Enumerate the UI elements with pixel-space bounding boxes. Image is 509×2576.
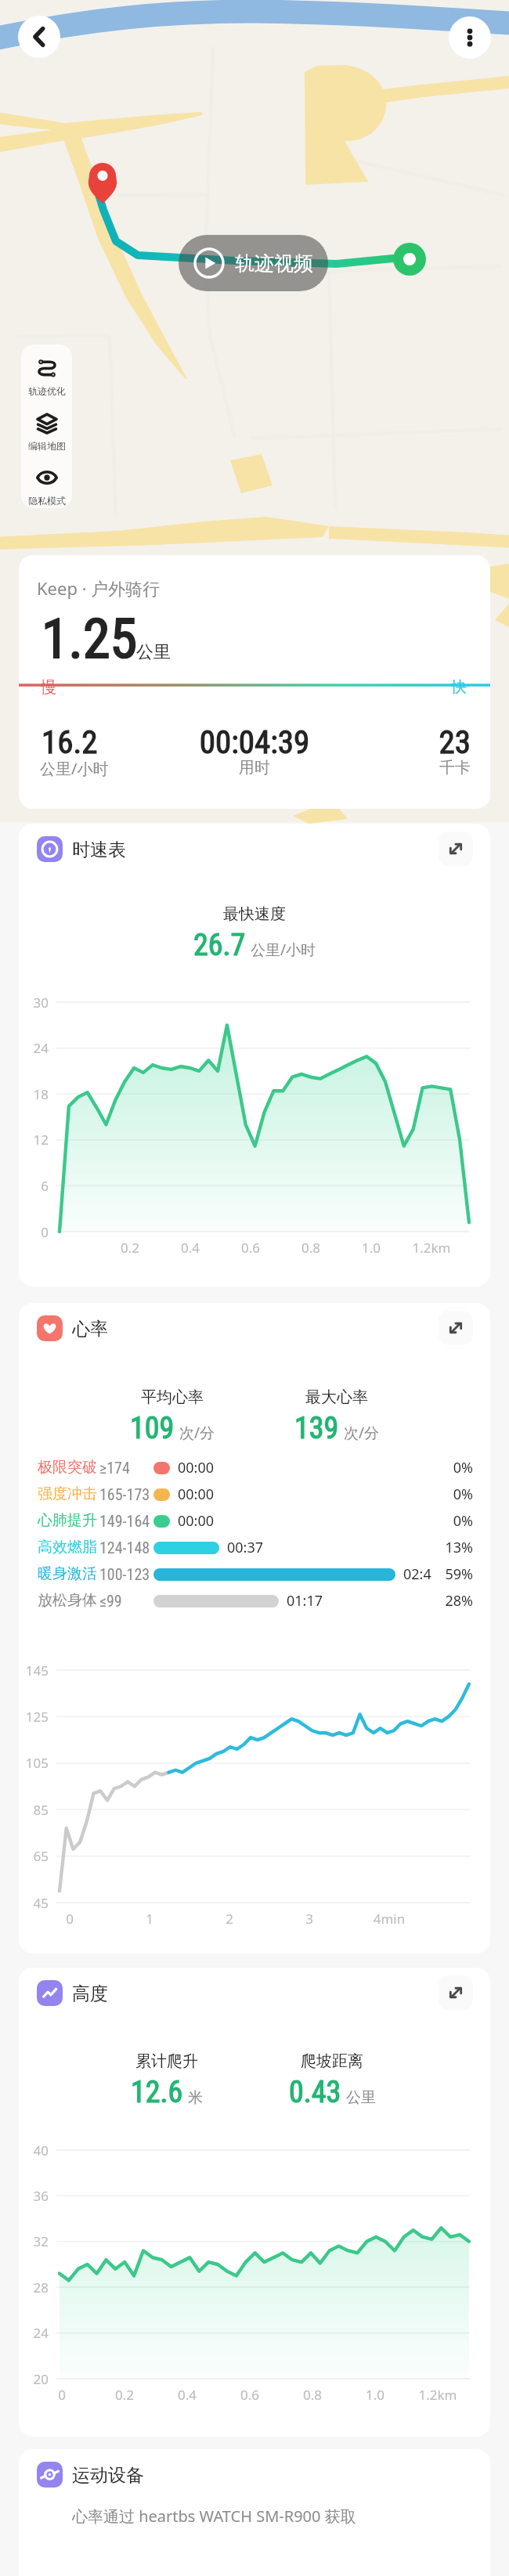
staticText: 公里/小时: [40, 758, 109, 779]
staticText: 139: [294, 1411, 339, 1446]
button[interactable]: Expand: [439, 1311, 473, 1345]
staticText: 30: [19, 994, 49, 1012]
staticText: 强度冲击: [38, 1485, 97, 1503]
staticText: 24: [19, 2324, 49, 2342]
staticText: 32: [19, 2232, 49, 2250]
staticText: 0.4: [143, 1239, 237, 1257]
staticText: 0.2: [78, 2386, 171, 2404]
staticText: 13%: [410, 1538, 473, 1557]
button[interactable]: 隐私模式: [21, 454, 72, 508]
staticText: Keep · 户外骑行: [37, 576, 161, 600]
staticText: 编辑地图: [28, 440, 66, 452]
staticText: 124-148: [99, 1539, 150, 1557]
staticText: 24: [19, 1039, 49, 1057]
staticText: 65: [19, 1847, 49, 1865]
staticText: 00:00: [178, 1485, 215, 1504]
staticText: 16.2: [42, 723, 98, 761]
staticText: 12.6: [131, 2075, 183, 2110]
staticText: 最大心率: [219, 1387, 454, 1407]
staticText: 米: [188, 2088, 203, 2107]
staticText: 109: [130, 1411, 175, 1446]
staticText: 0.6: [204, 1239, 298, 1257]
staticText: 0.8: [265, 2386, 359, 2404]
staticText: 次/分: [344, 1423, 380, 1443]
staticText: 3: [262, 1910, 356, 1928]
staticText: 最快速度: [137, 904, 372, 924]
staticText: 1.2km: [391, 2386, 485, 2404]
staticText: 6: [19, 1177, 49, 1195]
staticText: 平均心率: [55, 1387, 290, 1407]
staticText: 125: [19, 1708, 49, 1726]
staticText: 0%: [410, 1485, 473, 1504]
staticText: 28%: [410, 1591, 473, 1611]
staticText: 公里: [136, 641, 171, 663]
staticText: 12: [19, 1131, 49, 1149]
staticText: 26.7: [193, 928, 246, 963]
button[interactable]: Expand: [439, 832, 473, 866]
staticText: 次/分: [179, 1423, 215, 1443]
staticText: 0.6: [203, 2386, 297, 2404]
button[interactable]: Back: [18, 16, 60, 58]
staticText: 轨迹视频: [235, 251, 313, 276]
staticText: 28: [19, 2278, 49, 2296]
staticText: 01:17: [287, 1591, 323, 1611]
staticText: ≤99: [99, 1592, 122, 1610]
staticText: 0.2: [83, 1239, 177, 1257]
staticText: 累计爬升: [49, 2051, 284, 2071]
staticText: 105: [19, 1754, 49, 1772]
staticText: 用时: [137, 758, 372, 777]
staticText: 公里: [346, 2088, 376, 2107]
staticText: 0: [23, 1910, 117, 1928]
staticText: 1.2km: [384, 1239, 478, 1257]
staticText: 4min: [342, 1910, 436, 1928]
staticText: 1: [103, 1910, 197, 1928]
staticText: 隐私模式: [28, 495, 66, 507]
staticText: 45: [19, 1894, 49, 1912]
staticText: 145: [19, 1661, 49, 1679]
staticText: 23: [314, 723, 471, 761]
staticText: 1.25: [42, 607, 138, 671]
staticText: 18: [19, 1085, 49, 1103]
staticText: 02:4: [403, 1564, 431, 1584]
staticText: 0: [19, 1223, 49, 1241]
staticText: 千卡: [314, 758, 471, 777]
button[interactable]: 轨迹优化: [21, 345, 72, 399]
staticText: 1.0: [324, 1239, 418, 1257]
staticText: 0.43: [289, 2075, 341, 2110]
staticText: 0%: [410, 1458, 473, 1477]
button[interactable]: More options: [449, 16, 491, 59]
staticText: 快: [451, 677, 467, 697]
staticText: 放松身体: [38, 1591, 97, 1610]
staticText: 极限突破: [38, 1458, 97, 1477]
staticText: 00:00: [178, 1458, 215, 1477]
staticText: 时速表: [72, 839, 126, 861]
staticText: 00:04:39: [137, 723, 372, 761]
staticText: 36: [19, 2187, 49, 2205]
staticText: 心率通过 heartbs WATCH SM-R900 获取: [72, 2506, 356, 2527]
button[interactable]: 轨迹视频: [179, 235, 328, 291]
staticText: 2: [182, 1910, 276, 1928]
staticText: 00:00: [178, 1511, 215, 1531]
button[interactable]: 编辑地图: [21, 399, 72, 454]
staticText: ≥174: [99, 1459, 130, 1477]
staticText: 0.8: [264, 1239, 358, 1257]
staticText: 心率: [72, 1318, 108, 1340]
staticText: 高效燃脂: [38, 1538, 97, 1557]
staticText: 85: [19, 1801, 49, 1819]
staticText: 40: [19, 2141, 49, 2159]
staticText: 运动设备: [72, 2464, 144, 2487]
staticText: 公里/小时: [251, 940, 316, 960]
staticText: 149-164: [99, 1512, 150, 1530]
staticText: 100-123: [99, 1565, 150, 1583]
staticText: 00:37: [227, 1538, 264, 1557]
staticText: 暖身激活: [38, 1564, 97, 1583]
staticText: 慢: [41, 677, 56, 697]
staticText: 0.4: [140, 2386, 234, 2404]
staticText: 0%: [410, 1511, 473, 1531]
staticText: 20: [19, 2370, 49, 2388]
staticText: 165-173: [99, 1485, 150, 1503]
staticText: 爬坡距离: [215, 2051, 449, 2071]
staticText: 59%: [410, 1564, 473, 1584]
button[interactable]: Expand: [439, 1975, 473, 2010]
staticText: 心肺提升: [38, 1511, 97, 1530]
